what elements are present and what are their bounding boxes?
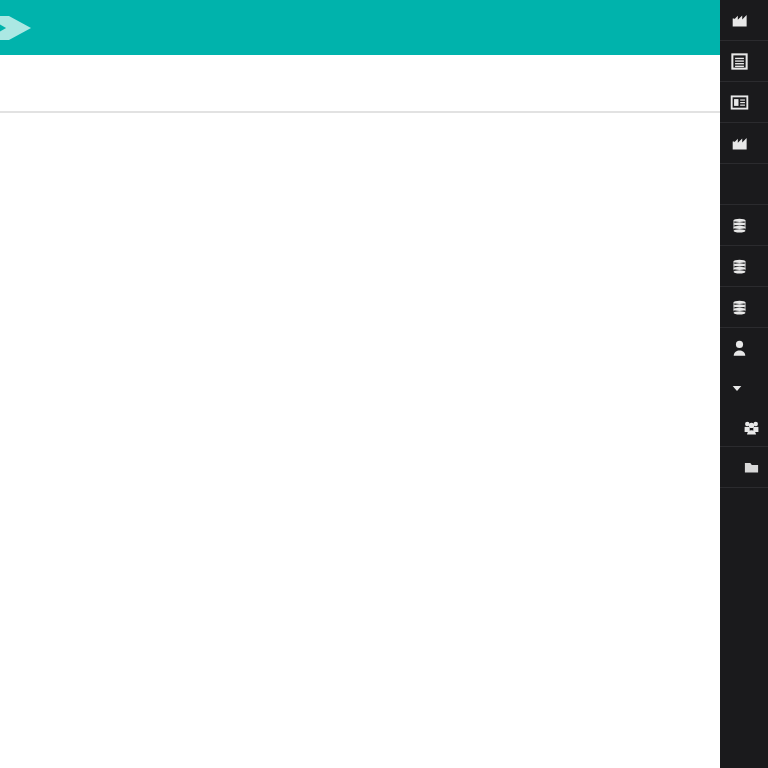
button[interactable]: Account: [720, 328, 768, 368]
button[interactable]: Datasets: [720, 246, 768, 286]
button[interactable]: Files: [720, 447, 768, 487]
button[interactable]: Home: [0, 13, 32, 43]
button[interactable]: Articles: [720, 82, 768, 122]
button[interactable]: Analytics: [720, 123, 768, 163]
button[interactable]: Dashboard: [720, 0, 768, 40]
button[interactable]: Data sources: [720, 205, 768, 245]
button[interactable]: Teams: [720, 408, 768, 446]
button[interactable]: Storage: [720, 287, 768, 327]
button[interactable]: Reports: [720, 41, 768, 81]
button[interactable]: Expand: [720, 368, 768, 408]
